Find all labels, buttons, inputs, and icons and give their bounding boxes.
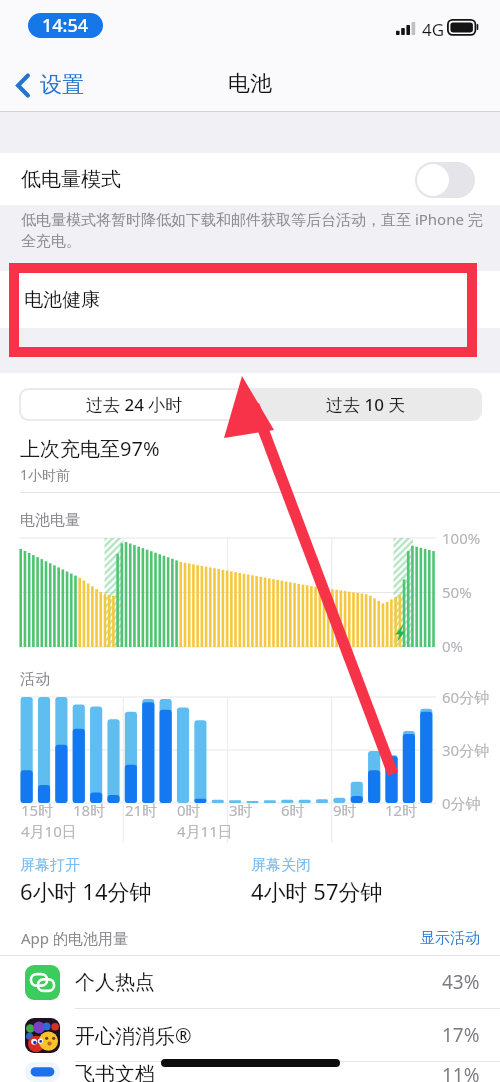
staticText: 飞书文档 xyxy=(75,1062,155,1082)
staticText: 显示活动 xyxy=(420,929,480,948)
button[interactable]: 飞书文档 xyxy=(0,1062,500,1082)
staticText: 3时 xyxy=(229,800,253,820)
staticText: 30分钟 xyxy=(442,740,490,760)
staticText: 屏幕关闭 xyxy=(251,856,311,875)
staticText: 屏幕打开 xyxy=(20,856,80,875)
staticText: 43% xyxy=(442,969,480,995)
staticText: 0分钟 xyxy=(442,793,481,813)
staticText: 6小时 14分钟 xyxy=(20,876,152,906)
button[interactable]: 低电量模式开关 xyxy=(415,162,475,198)
staticText: 60分钟 xyxy=(442,687,490,707)
button[interactable]: 开心消消乐® xyxy=(0,1009,500,1061)
staticText: 18时 xyxy=(73,800,106,820)
button[interactable]: 过去 24 小时 xyxy=(21,390,248,419)
staticText: 低电量模式将暂时降低如下载和邮件获取等后台活动，直至 iPhone 完全充电。 xyxy=(21,209,483,250)
button[interactable]: 电池健康 xyxy=(0,271,500,328)
staticText: 4小时 57分钟 xyxy=(251,876,383,906)
staticText: 电池电量 xyxy=(20,511,80,530)
staticText: 12时 xyxy=(385,800,418,820)
staticText: 0时 xyxy=(177,800,201,820)
staticText: 11% xyxy=(442,1062,480,1082)
staticText: App 的电池用量 xyxy=(21,928,128,948)
staticText: 9时 xyxy=(333,800,357,820)
staticText: 50% xyxy=(442,582,472,602)
staticText: 个人热点 xyxy=(75,970,155,995)
staticText: 4G xyxy=(422,18,445,41)
staticText: 过去 24 小时 xyxy=(86,393,183,416)
staticText: 电池健康 xyxy=(24,288,100,312)
staticText: 6时 xyxy=(281,800,305,820)
staticText: 4月10日 xyxy=(21,821,77,841)
staticText: 100% xyxy=(442,528,481,548)
staticText: 15时 xyxy=(21,800,54,820)
staticText: 上次充电至97% xyxy=(20,435,160,462)
staticText: 21时 xyxy=(125,800,158,820)
staticText: 过去 10 天 xyxy=(326,393,406,416)
staticText: 17% xyxy=(442,1022,480,1048)
button[interactable]: 过去 10 天 xyxy=(250,388,482,421)
staticText: 低电量模式 xyxy=(21,167,121,192)
staticText: 开心消消乐® xyxy=(75,1022,192,1049)
staticText: 4月11日 xyxy=(177,821,233,841)
staticText: 设置 xyxy=(40,71,84,99)
staticText: 活动 xyxy=(20,670,50,689)
button[interactable]: 个人热点 xyxy=(0,956,500,1008)
staticText: 1小时前 xyxy=(20,465,71,484)
button[interactable]: 设置 xyxy=(11,67,89,103)
staticText: 0% xyxy=(442,636,464,656)
staticText: 14:54 xyxy=(42,13,89,38)
staticText: 电池 xyxy=(228,70,272,98)
